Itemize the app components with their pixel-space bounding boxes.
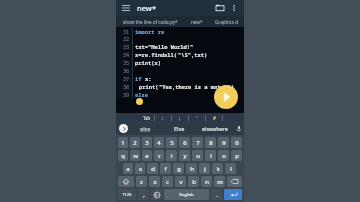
button[interactable]: 4 [154, 137, 164, 148]
button[interactable]: z [136, 176, 147, 187]
button[interactable]: else [128, 122, 162, 135]
staticText: 5 [170, 139, 174, 147]
staticText: 6 [183, 139, 187, 147]
button[interactable]: , [138, 189, 149, 200]
button[interactable]: Shift [118, 176, 134, 187]
button[interactable]: d [147, 163, 158, 174]
staticText: j [204, 165, 206, 173]
button[interactable]: c [162, 176, 173, 187]
button[interactable]: w [130, 150, 140, 161]
staticText: if [135, 75, 145, 82]
staticText: 35 [123, 59, 130, 66]
button[interactable]: x [149, 176, 160, 187]
button[interactable]: ' [189, 113, 205, 122]
staticText: s [139, 165, 142, 173]
button[interactable]: v [175, 176, 186, 187]
staticText: c [166, 178, 169, 186]
staticText: . [216, 191, 218, 199]
button[interactable]: j [199, 163, 210, 174]
staticText: 1 [121, 139, 125, 147]
staticText: 37 [123, 75, 130, 82]
button[interactable]: r [154, 150, 164, 161]
button[interactable]: 9 [218, 137, 229, 148]
button[interactable]: 0 [231, 137, 242, 148]
button[interactable]: More options [228, 2, 240, 14]
button[interactable]: Expand suggestions [119, 124, 128, 133]
staticText: l [230, 165, 232, 173]
button[interactable]: Open folder [214, 2, 226, 14]
button[interactable]: e [142, 150, 152, 161]
staticText: q [121, 152, 125, 160]
button[interactable]: 1 [118, 137, 128, 148]
button[interactable]: k [212, 163, 223, 174]
staticText: 31 [123, 28, 130, 34]
button[interactable]: new* [184, 16, 210, 27]
button[interactable]: b [188, 176, 199, 187]
staticText: 4 [157, 139, 161, 147]
button[interactable]: o [218, 150, 229, 161]
button[interactable]: English [164, 189, 209, 200]
button[interactable]: q [118, 150, 128, 161]
button[interactable]: ; [172, 113, 188, 122]
button[interactable]: ?123 [118, 189, 136, 200]
button[interactable]: 8 [205, 137, 216, 148]
staticText: print(x) [135, 59, 161, 66]
button[interactable]: Menu [120, 2, 132, 14]
button[interactable]: g [173, 163, 184, 174]
button[interactable]: Voice input [233, 122, 244, 135]
button[interactable]: Run [214, 85, 238, 109]
staticText: x [153, 178, 157, 186]
staticText: a [126, 165, 130, 173]
staticText: show the line of code.py* [123, 19, 178, 25]
button[interactable]: . [211, 189, 222, 200]
button[interactable]: Enter [224, 189, 242, 200]
button[interactable]: show the line of code.py* [116, 16, 184, 27]
button[interactable]: m [214, 176, 225, 187]
button[interactable]: Tab [140, 115, 154, 121]
staticText: Else [174, 125, 185, 133]
button[interactable]: h [186, 163, 197, 174]
button[interactable]: Backspace [227, 176, 242, 187]
button[interactable]: : [155, 113, 171, 122]
button[interactable]: n [201, 176, 212, 187]
staticText: 38 [123, 83, 130, 90]
button[interactable]: a [123, 163, 133, 174]
button[interactable]: Change language [151, 189, 162, 200]
button[interactable]: Else [162, 122, 196, 135]
button[interactable]: l [225, 163, 236, 174]
staticText: : [162, 115, 164, 121]
button[interactable]: s [135, 163, 145, 174]
staticText: "\S" [178, 51, 191, 58]
button[interactable]: 2 [130, 137, 140, 148]
button[interactable]: Graphics d [210, 16, 244, 27]
staticText: k [216, 165, 220, 173]
button[interactable]: 5 [166, 137, 177, 148]
button[interactable]: f [160, 163, 171, 174]
button[interactable]: elsewhere [196, 122, 233, 135]
staticText: Graphics d [215, 19, 239, 25]
staticText: h [190, 165, 194, 173]
staticText: 33 [123, 43, 130, 50]
button[interactable]: t [166, 150, 177, 161]
staticText: else [135, 91, 148, 98]
button[interactable]: 3 [142, 137, 152, 148]
button[interactable]: 7 [192, 137, 203, 148]
staticText: "Hello World!" [148, 43, 194, 50]
staticText: x: [145, 75, 152, 82]
button[interactable]: y [179, 150, 190, 161]
staticText: txt= [135, 43, 148, 50]
button[interactable]: # [206, 113, 222, 122]
staticText: "Yes,there is a match" [159, 83, 231, 90]
staticText: g [177, 165, 181, 173]
staticText: ; [179, 115, 181, 121]
button[interactable]: p [231, 150, 242, 161]
button[interactable]: 6 [179, 137, 190, 148]
button[interactable]: i [205, 150, 216, 161]
staticText: v [179, 178, 183, 186]
button[interactable]: u [192, 150, 203, 161]
staticText: else [140, 125, 151, 133]
staticText: ) [231, 83, 235, 90]
staticText: f [164, 165, 167, 173]
staticText: 36 [123, 67, 130, 74]
staticText: 0 [235, 139, 239, 147]
